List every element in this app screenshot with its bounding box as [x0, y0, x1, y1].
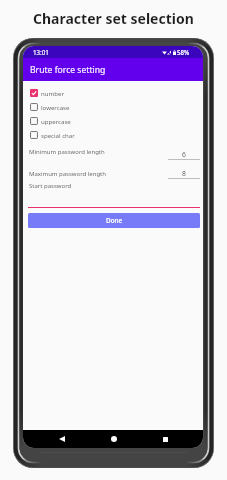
staticText: uppercase: [41, 117, 71, 125]
staticText: 8: [182, 169, 186, 178]
button[interactable]: Recent apps: [157, 431, 173, 447]
staticText: Maximum password length: [29, 170, 106, 178]
staticText: Minimum password length: [29, 148, 105, 156]
staticText: Character set selection: [33, 9, 194, 28]
staticText: 13:01: [33, 48, 49, 56]
button[interactable]: special char: [23, 128, 203, 142]
staticText: Start password: [29, 182, 72, 190]
button[interactable]: Home: [106, 431, 122, 447]
staticText: special char: [41, 131, 75, 139]
button[interactable]: lowercase: [23, 100, 203, 114]
staticText: Done: [106, 216, 123, 225]
staticText: lowercase: [41, 103, 70, 111]
button[interactable]: Back: [54, 431, 70, 447]
staticText: 6: [182, 150, 186, 159]
button[interactable]: uppercase: [23, 114, 203, 128]
staticText: Brute force setting: [30, 64, 106, 76]
staticText: 58%: [177, 48, 190, 56]
button[interactable]: Done: [28, 213, 200, 228]
button[interactable]: number: [23, 86, 203, 100]
staticText: number: [41, 89, 64, 97]
